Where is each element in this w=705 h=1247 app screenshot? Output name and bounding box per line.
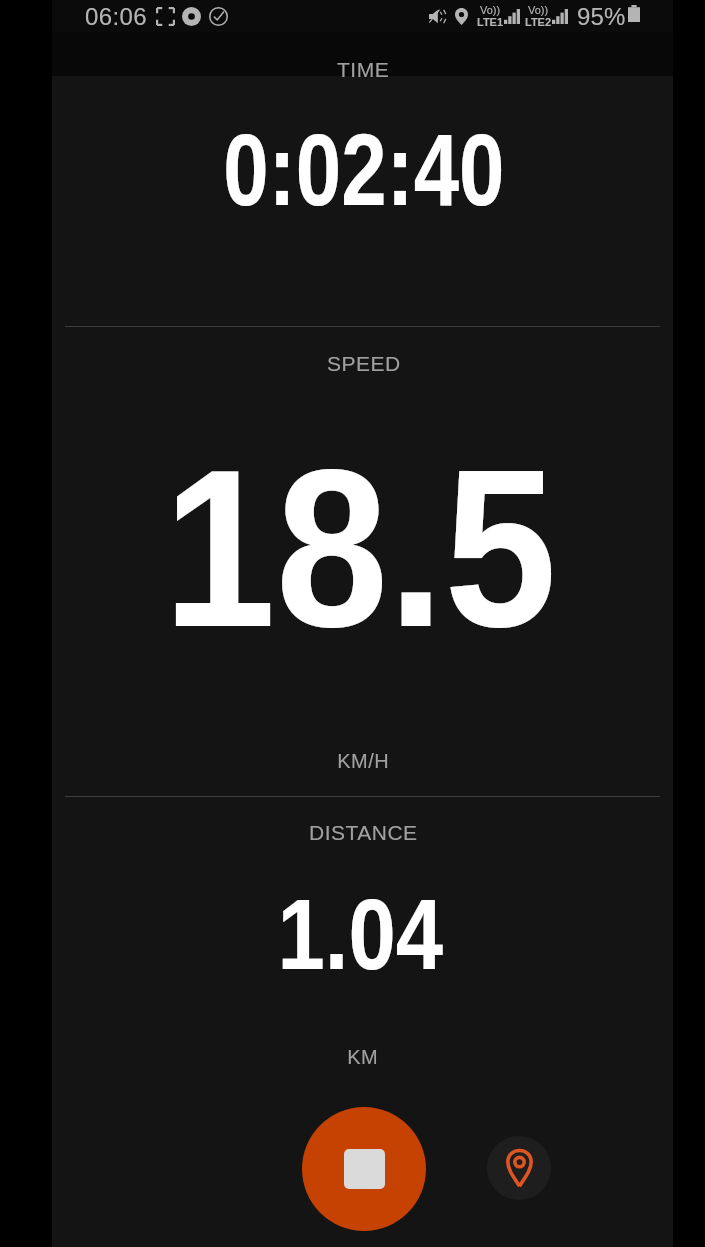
staticText: 18.5 bbox=[163, 423, 557, 673]
staticText: KM/H bbox=[337, 750, 389, 772]
staticText: LTE1 bbox=[477, 16, 504, 28]
staticText: KM bbox=[347, 1046, 378, 1068]
staticText: 06:06 bbox=[85, 3, 148, 30]
staticText: SPEED bbox=[327, 352, 401, 375]
staticText: Vo)) bbox=[480, 4, 501, 16]
button[interactable]: Location bbox=[487, 1136, 551, 1200]
staticText: 95% bbox=[577, 3, 626, 30]
staticText: LTE2 bbox=[525, 16, 552, 28]
button[interactable]: Stop bbox=[302, 1107, 426, 1231]
staticText: DISTANCE bbox=[309, 821, 418, 844]
staticText: Vo)) bbox=[528, 4, 549, 16]
staticText: 0:02:40 bbox=[223, 113, 505, 227]
staticText: 1.04 bbox=[277, 878, 443, 990]
staticText: TIME bbox=[337, 58, 390, 81]
